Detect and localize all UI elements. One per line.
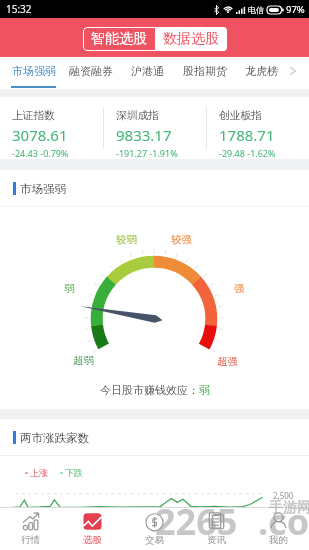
staticText: 融资融券 [69, 64, 113, 78]
other: More tabs [289, 65, 297, 77]
button[interactable]: 上证指数 [0, 97, 103, 159]
staticText: 今日股市赚钱效应： [100, 383, 199, 397]
staticText: 9833.17 [116, 125, 172, 145]
staticText: 超弱 [73, 354, 94, 367]
staticText: 1788.71 [219, 125, 275, 145]
staticText: 龙虎榜 [245, 64, 278, 78]
staticText: 下跌 [65, 467, 83, 478]
staticText: -29.48 -1.62% [219, 147, 276, 159]
button[interactable]: 股指期货 [176, 57, 233, 89]
staticText: 超强 [217, 355, 238, 368]
staticText: 我的 [269, 534, 288, 546]
staticText: 较弱 [116, 233, 137, 246]
button[interactable]: 智能选股 [83, 27, 155, 51]
staticText: 弱 [199, 383, 210, 397]
staticText: 弱 [64, 282, 75, 295]
staticText: 15:32 [6, 2, 32, 16]
button[interactable]: 行情 [0, 508, 61, 550]
staticText: 市场强弱 [12, 64, 56, 78]
staticText: 电信 [248, 5, 264, 15]
staticText: 强 [234, 282, 245, 295]
button[interactable]: 交易 [123, 508, 185, 550]
staticText: 2,500 [273, 490, 294, 501]
staticText: 智能选股 [91, 30, 147, 48]
staticText: 2265 [155, 497, 238, 546]
button[interactable]: 选股 [61, 508, 123, 550]
staticText: .com [258, 497, 309, 546]
staticText: 上证指数 [12, 109, 55, 122]
button[interactable]: 市场强弱 [5, 57, 62, 89]
staticText: 上涨 [30, 467, 48, 478]
staticText: 97% [286, 3, 305, 16]
staticText: 深圳成指 [116, 109, 159, 122]
staticText: 两市涨跌家数 [20, 431, 89, 445]
staticText: 资讯 [207, 534, 226, 546]
staticText: 选股 [83, 534, 102, 546]
staticText: 沪港通 [131, 64, 164, 78]
staticText: 3078.61 [12, 125, 68, 145]
staticText: 市场强弱 [20, 182, 66, 196]
button[interactable]: 我的 [247, 508, 309, 550]
staticText: 行情 [21, 534, 40, 546]
button[interactable]: 深圳成指 [104, 97, 206, 159]
button[interactable]: 龙虎榜 [233, 57, 290, 89]
staticText: 数据选股 [163, 30, 219, 48]
staticText: 创业板指 [219, 109, 262, 122]
button[interactable]: 融资融券 [62, 57, 119, 89]
staticText: 股指期货 [183, 64, 227, 78]
staticText: 较强 [171, 233, 192, 246]
staticText: -24.43 -0.79% [12, 147, 69, 159]
staticText: 手游网 [269, 499, 309, 517]
staticText: -191.27 -1.91% [116, 147, 178, 159]
button[interactable]: 数据选股 [155, 27, 227, 51]
staticText: 交易 [145, 534, 164, 546]
button[interactable]: 创业板指 [207, 97, 309, 159]
button[interactable]: 沪港通 [119, 57, 176, 89]
button[interactable]: 资讯 [185, 508, 247, 550]
